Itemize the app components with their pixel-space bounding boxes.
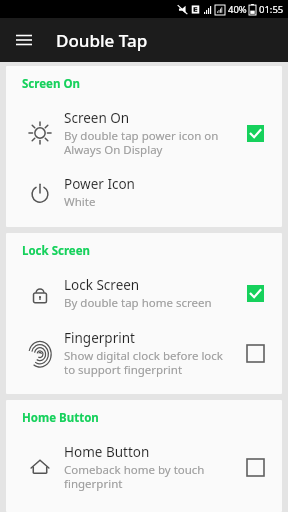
- staticText: 40%: [228, 3, 247, 16]
- button[interactable]: Enabled checkbox: [247, 125, 264, 142]
- staticText: Fingerprint: [64, 329, 135, 347]
- staticText: Screen On: [64, 109, 130, 127]
- staticText: By double tap home screen: [64, 295, 212, 311]
- staticText: Home Button: [64, 443, 150, 461]
- staticText: Lock Screen: [22, 243, 91, 259]
- button[interactable]: Lock Screen: [6, 267, 282, 320]
- staticText: Double Tap: [56, 29, 148, 52]
- staticText: White: [64, 194, 96, 210]
- button[interactable]: Enabled checkbox: [247, 285, 264, 302]
- staticText: By double tap power icon on Always On Di…: [64, 128, 230, 157]
- staticText: Comeback home by touch fingerprint: [64, 462, 230, 491]
- button[interactable]: Open navigation menu: [8, 24, 40, 56]
- staticText: Show digital clock before lock to suppor…: [64, 348, 230, 377]
- button[interactable]: Disabled checkbox: [247, 459, 264, 476]
- button[interactable]: Fingerprint: [6, 320, 282, 386]
- staticText: 01:55: [259, 3, 284, 16]
- staticText: Screen On: [22, 76, 80, 92]
- button[interactable]: Disabled checkbox: [247, 345, 264, 362]
- staticText: Lock Screen: [64, 276, 140, 294]
- staticText: Home Button: [22, 410, 99, 426]
- button[interactable]: Screen On: [6, 100, 282, 166]
- staticText: Power Icon: [64, 175, 135, 193]
- button[interactable]: Power Icon: [6, 166, 282, 219]
- button[interactable]: Home Button: [6, 434, 282, 500]
